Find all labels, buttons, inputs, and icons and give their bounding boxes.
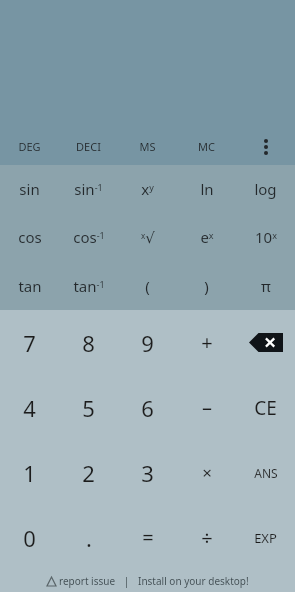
button[interactable]: sin <box>0 165 59 213</box>
staticText: DECI <box>76 139 101 154</box>
staticText: + <box>201 329 213 356</box>
staticText: 0 <box>23 523 36 553</box>
button[interactable]: + <box>177 310 236 375</box>
staticText: tan <box>18 276 42 296</box>
staticText: | <box>116 574 138 588</box>
staticText: sin <box>19 179 40 199</box>
staticText: 2 <box>82 458 95 488</box>
staticText: ln <box>200 179 214 199</box>
staticText: cos <box>18 227 42 247</box>
button[interactable]: ( <box>118 261 177 310</box>
staticText: 4 <box>23 393 36 423</box>
button[interactable]: 10x <box>236 213 295 261</box>
staticText: log <box>254 179 277 199</box>
button[interactable]: xy <box>118 165 177 213</box>
staticText: 6 <box>141 393 154 423</box>
staticText: MS <box>139 139 156 154</box>
button[interactable]: × <box>177 440 236 505</box>
staticText: × <box>202 461 212 484</box>
button[interactable]: 5 <box>59 375 118 440</box>
button[interactable]: x√ <box>118 213 177 261</box>
button[interactable]: cos-1 <box>59 213 118 261</box>
button[interactable]: cos <box>0 213 59 261</box>
button[interactable]: ln <box>177 165 236 213</box>
staticText: 1 <box>23 458 36 488</box>
button[interactable]: ) <box>177 261 236 310</box>
staticText: ) <box>204 276 209 296</box>
staticText: sin-1 <box>74 179 103 199</box>
button[interactable]: 9 <box>118 310 177 375</box>
button[interactable]: 6 <box>118 375 177 440</box>
button[interactable]: ANS <box>236 440 295 505</box>
button[interactable]: sin-1 <box>59 165 118 213</box>
staticText: DEG <box>18 139 41 154</box>
staticText: cos-1 <box>73 227 105 247</box>
staticText: 3 <box>141 458 154 488</box>
staticText: report issue <box>59 574 116 588</box>
button[interactable]: 1 <box>0 440 59 505</box>
staticText: ANS <box>254 465 278 481</box>
button[interactable]: 8 <box>59 310 118 375</box>
button[interactable]: CE <box>236 375 295 440</box>
button[interactable]: . <box>59 505 118 570</box>
staticText: = <box>142 524 154 551</box>
button[interactable]: 2 <box>59 440 118 505</box>
staticText: EXP <box>254 529 277 547</box>
staticText: 9 <box>141 328 154 358</box>
staticText: ex <box>200 227 214 247</box>
button[interactable]: EXP <box>236 505 295 570</box>
staticText: xy <box>141 179 154 199</box>
staticText: ÷ <box>201 524 213 551</box>
button[interactable]: More options <box>236 128 295 165</box>
staticText: 8 <box>82 328 95 358</box>
button[interactable]: DEG <box>0 128 59 165</box>
button[interactable]: ÷ <box>177 505 236 570</box>
button[interactable]: DECI <box>59 128 118 165</box>
staticText: 10x <box>255 227 277 247</box>
button[interactable]: log <box>236 165 295 213</box>
staticText: 5 <box>82 393 95 423</box>
staticText: x√ <box>141 229 155 246</box>
staticText: – <box>202 394 212 421</box>
button[interactable]: 4 <box>0 375 59 440</box>
button[interactable]: tan <box>0 261 59 310</box>
staticText: CE <box>254 395 277 421</box>
button[interactable]: π <box>236 261 295 310</box>
button[interactable]: Backspace <box>236 310 295 375</box>
staticText: 7 <box>23 328 36 358</box>
button[interactable]: MC <box>177 128 236 165</box>
button[interactable]: MS <box>118 128 177 165</box>
button[interactable]: report issue <box>47 574 116 588</box>
staticText: ( <box>145 276 150 296</box>
button[interactable]: tan-1 <box>59 261 118 310</box>
button[interactable]: = <box>118 505 177 570</box>
button[interactable]: Install on your desktop! <box>138 574 249 588</box>
button[interactable]: ex <box>177 213 236 261</box>
staticText: π <box>261 276 271 296</box>
button[interactable]: – <box>177 375 236 440</box>
button[interactable]: 0 <box>0 505 59 570</box>
button[interactable]: 3 <box>118 440 177 505</box>
staticText: tan-1 <box>73 276 105 296</box>
button[interactable]: 7 <box>0 310 59 375</box>
staticText: . <box>86 523 92 553</box>
staticText: MC <box>198 139 215 154</box>
